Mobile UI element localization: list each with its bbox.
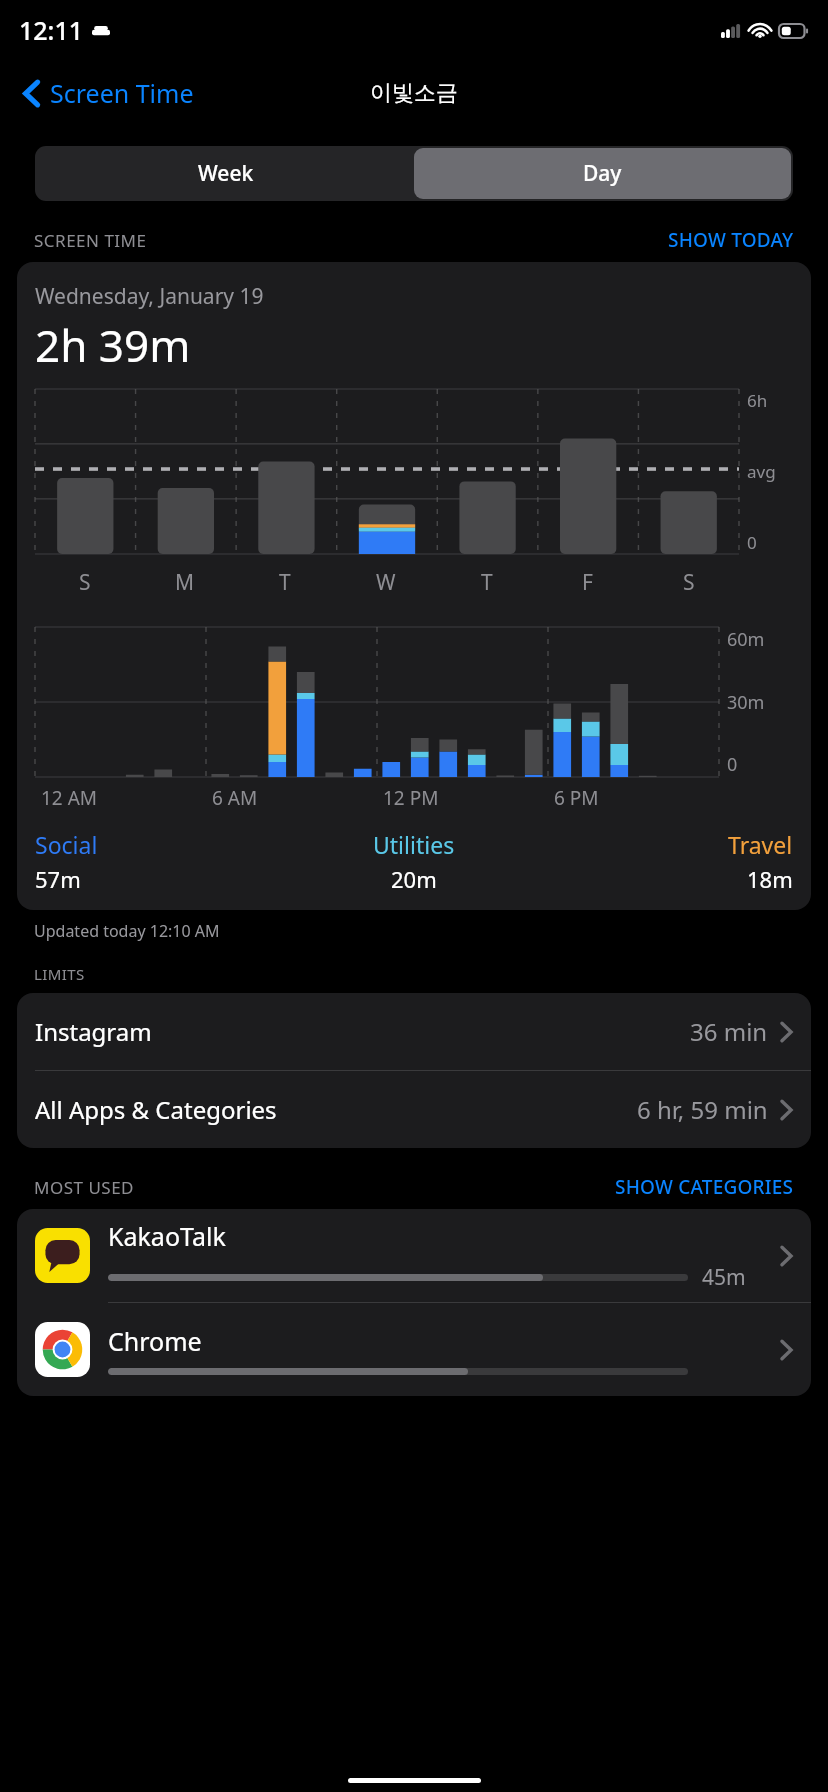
staticText: Wednesday, January 19	[35, 282, 264, 311]
staticText: 이빛소금	[370, 79, 458, 107]
staticText: SCREEN TIME	[34, 229, 147, 252]
staticText: 6 PM	[554, 785, 599, 811]
staticText: 12 AM	[41, 785, 98, 811]
staticText: Screen Time	[50, 76, 194, 110]
staticText: 57m	[35, 864, 81, 894]
button[interactable]: All Apps & Categories	[17, 1071, 811, 1148]
staticText: 60m	[727, 627, 765, 652]
staticText: 6 hr, 59 min	[637, 1093, 768, 1126]
staticText: 18m	[747, 864, 793, 894]
staticText: T	[481, 568, 493, 597]
button[interactable]: Chrome	[17, 1303, 811, 1396]
button[interactable]: Screen Time	[18, 70, 200, 116]
staticText: LIMITS	[34, 964, 85, 984]
staticText: T	[279, 568, 291, 597]
staticText: M	[175, 568, 195, 597]
button[interactable]: KakaoTalk	[17, 1209, 811, 1303]
staticText: SHOW TODAY	[668, 227, 794, 253]
staticText: 45m	[702, 1263, 746, 1292]
staticText: Social	[35, 829, 98, 860]
staticText: All Apps & Categories	[35, 1093, 637, 1126]
staticText: Travel	[728, 829, 793, 860]
staticText: 6 AM	[212, 785, 258, 811]
staticText: KakaoTalk	[108, 1219, 226, 1253]
staticText: 20m	[391, 864, 437, 894]
staticText: MOST USED	[34, 1176, 135, 1199]
button[interactable]: Instagram	[17, 993, 811, 1071]
button[interactable]: SHOW TODAY	[668, 227, 794, 253]
staticText: SHOW CATEGORIES	[615, 1174, 794, 1200]
staticText: F	[582, 568, 593, 597]
button[interactable]: SHOW CATEGORIES	[615, 1174, 794, 1200]
staticText: 12 PM	[383, 785, 439, 811]
staticText: Day	[583, 159, 622, 188]
staticText: Updated today 12:10 AM	[34, 920, 220, 942]
staticText: 30m	[727, 690, 765, 715]
staticText: 0	[747, 531, 757, 554]
staticText: 0	[727, 752, 738, 777]
staticText: 36 min	[690, 1015, 768, 1048]
staticText: Chrome	[108, 1324, 202, 1358]
button[interactable]: Day	[414, 148, 791, 199]
staticText: Utilities	[373, 829, 455, 860]
staticText: Instagram	[35, 1015, 690, 1048]
staticText: Week	[198, 159, 254, 188]
staticText: 2h 39m	[35, 315, 191, 375]
staticText: 12:11	[19, 13, 84, 47]
staticText: W	[376, 568, 396, 597]
staticText: S	[79, 568, 91, 597]
staticText: S	[683, 568, 695, 597]
staticText: 6h	[747, 389, 768, 412]
button[interactable]: Week	[37, 148, 414, 199]
staticText: avg	[747, 460, 776, 483]
